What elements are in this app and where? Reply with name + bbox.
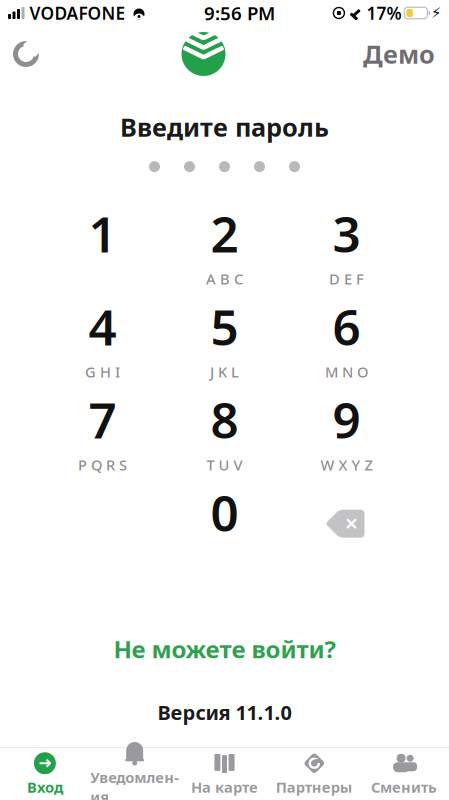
button[interactable]: Партнеры — [269, 749, 359, 799]
button[interactable]: 1 — [41, 206, 163, 284]
staticText: 9:56 PM — [204, 1, 275, 25]
staticText: 9 — [332, 387, 360, 452]
button[interactable]: 6 — [285, 299, 407, 377]
staticText: Сменить — [371, 777, 437, 797]
staticText: 3 — [332, 201, 360, 266]
staticText: Партнеры — [276, 777, 353, 797]
button[interactable]: 8 — [163, 392, 285, 470]
staticText: 1 — [88, 201, 116, 266]
staticText: 17% — [366, 1, 401, 24]
staticText: A B C — [206, 269, 243, 289]
staticText: 7 — [88, 387, 116, 452]
staticText: P Q R S — [78, 455, 127, 475]
staticText: 0 — [210, 480, 238, 545]
staticText: 6 — [332, 294, 360, 359]
staticText: J K L — [210, 362, 239, 382]
staticText: Не можете войти? — [113, 633, 335, 665]
button[interactable]: 9 — [285, 392, 407, 470]
button[interactable]: Позвонить — [0, 28, 52, 80]
button[interactable]: 0 — [163, 485, 285, 563]
staticText: M N O — [325, 362, 368, 382]
staticText: G H I — [85, 362, 120, 382]
staticText: Уведомления — [90, 767, 179, 800]
button[interactable]: Сменить — [359, 749, 449, 799]
staticText: Вход — [27, 777, 63, 797]
staticText: D E F — [329, 269, 364, 289]
button[interactable]: Не можете войти? — [93, 625, 355, 673]
button[interactable]: 3 — [285, 206, 407, 284]
staticText: Версия 11.1.0 — [157, 699, 291, 725]
staticText: На карте — [191, 777, 258, 797]
button[interactable]: 7 — [41, 392, 163, 470]
staticText: T U V — [206, 455, 242, 475]
staticText: Введите пароль — [120, 110, 329, 144]
button[interactable]: Удалить — [285, 485, 407, 563]
button[interactable]: Демо — [355, 28, 449, 80]
staticText: 4 — [88, 294, 116, 359]
staticText: VODAFONE — [29, 1, 125, 24]
button[interactable]: Вход — [0, 749, 90, 799]
button[interactable]: Уведомления — [90, 749, 180, 799]
staticText: 2 — [210, 201, 238, 266]
staticText: Демо — [363, 37, 435, 71]
staticText: 8 — [210, 387, 238, 452]
staticText: W X Y Z — [320, 455, 372, 475]
button[interactable]: 5 — [163, 299, 285, 377]
staticText: 5 — [210, 294, 238, 359]
staticText: ⚡︎ — [431, 5, 441, 21]
button[interactable]: На карте — [180, 749, 269, 799]
button[interactable]: 2 — [163, 206, 285, 284]
button[interactable]: 4 — [41, 299, 163, 377]
